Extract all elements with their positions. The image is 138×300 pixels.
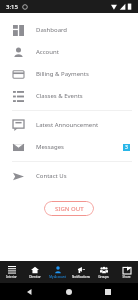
button[interactable]: SIGN OUT bbox=[44, 201, 94, 216]
staticText: Latest Announcement bbox=[36, 121, 99, 129]
button[interactable]: Billing & Payments bbox=[0, 63, 138, 85]
staticText: Share bbox=[122, 275, 131, 279]
button[interactable]: Director bbox=[23, 261, 46, 283]
button[interactable]: Recents bbox=[99, 283, 117, 300]
button[interactable]: Share bbox=[115, 261, 138, 283]
button[interactable]: Notifications bbox=[69, 261, 92, 283]
staticText: Contact Us bbox=[36, 172, 67, 180]
button[interactable]: Contact Us bbox=[0, 165, 138, 187]
staticText: My Account bbox=[49, 275, 66, 279]
button[interactable]: Back bbox=[21, 283, 39, 300]
button[interactable]: Messages bbox=[0, 136, 138, 158]
button[interactable]: Interior bbox=[0, 261, 23, 283]
staticText: Director bbox=[29, 275, 41, 279]
button[interactable]: My Account bbox=[46, 261, 69, 283]
staticText: Groups bbox=[98, 275, 109, 279]
staticText: Dashboard bbox=[36, 26, 68, 34]
button[interactable]: Latest Announcement bbox=[0, 114, 138, 136]
staticText: Billing & Payments bbox=[36, 70, 89, 78]
staticText: SIGN OUT bbox=[55, 205, 84, 213]
staticText: Classes & Events bbox=[36, 92, 83, 100]
staticText: 3:15 bbox=[6, 3, 18, 11]
staticText: 3 bbox=[125, 144, 128, 151]
staticText: Interior bbox=[6, 275, 17, 279]
button[interactable]: Classes & Events bbox=[0, 85, 138, 107]
button[interactable]: Home bbox=[60, 283, 78, 300]
staticText: Notifications bbox=[72, 275, 90, 279]
button[interactable]: Dashboard bbox=[0, 19, 138, 41]
button[interactable]: Account bbox=[0, 41, 138, 63]
staticText: Account bbox=[36, 48, 59, 56]
button[interactable]: Groups bbox=[92, 261, 115, 283]
staticText: Messages bbox=[36, 143, 64, 151]
